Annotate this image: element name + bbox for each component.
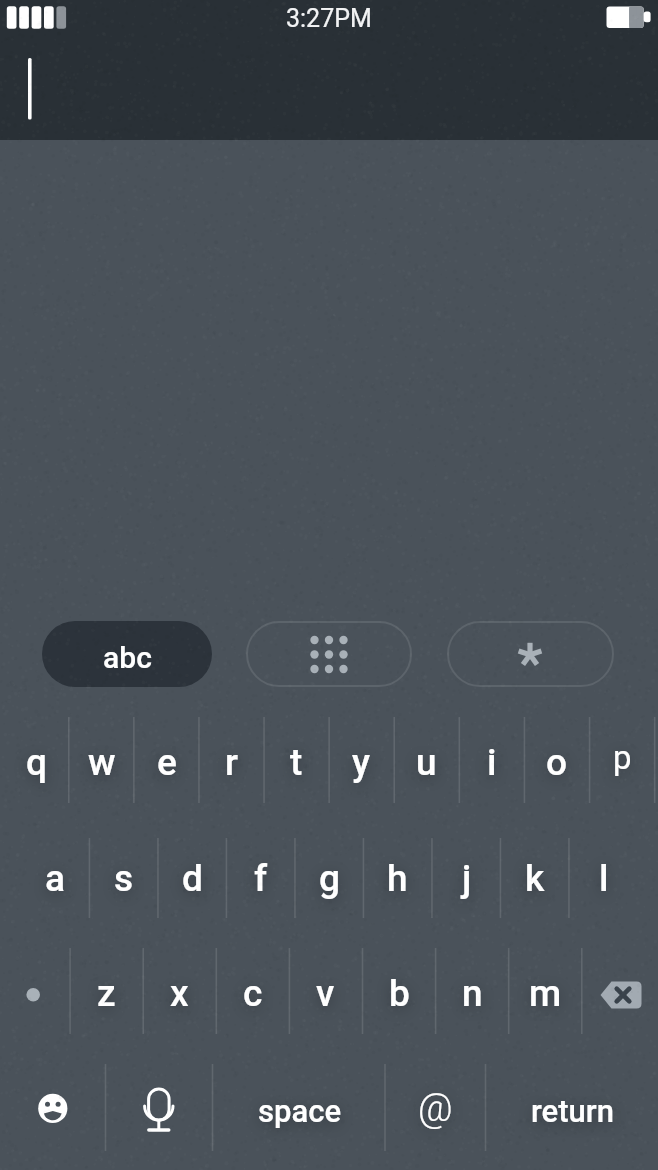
staticText: f — [254, 857, 268, 900]
button[interactable]: j — [432, 828, 501, 928]
button[interactable]: t — [264, 712, 329, 812]
staticText: d — [182, 857, 203, 900]
staticText: w — [88, 741, 116, 784]
button[interactable]: return — [486, 1055, 658, 1167]
staticText: z — [97, 972, 116, 1015]
staticText: b — [389, 972, 410, 1015]
staticText: n — [462, 972, 483, 1015]
button[interactable]: q — [4, 712, 69, 812]
staticText: 3:27PM — [286, 4, 372, 33]
staticText: c — [243, 972, 263, 1015]
button[interactable] — [0, 943, 70, 1043]
button[interactable]: z — [70, 943, 143, 1043]
staticText: a — [45, 857, 66, 900]
button[interactable] — [246, 621, 412, 687]
staticText: return — [531, 1093, 614, 1129]
staticText: v — [316, 972, 335, 1015]
button[interactable]: @ — [385, 1055, 486, 1167]
staticText: space — [258, 1093, 342, 1129]
staticText: @ — [418, 1086, 453, 1131]
staticText: g — [319, 857, 340, 900]
button[interactable]: i — [459, 712, 524, 812]
staticText: y — [352, 741, 371, 784]
button[interactable]: n — [436, 943, 509, 1043]
staticText: q — [26, 741, 48, 784]
staticText: l — [599, 857, 609, 900]
staticText: e — [157, 741, 177, 784]
button[interactable]: w — [69, 712, 134, 812]
button[interactable]: s — [89, 828, 158, 928]
staticText: r — [225, 741, 239, 784]
button[interactable]: c — [216, 943, 289, 1043]
button[interactable]: o — [524, 712, 589, 812]
button[interactable]: u — [394, 712, 459, 812]
button[interactable] — [447, 621, 614, 687]
button[interactable]: space — [213, 1055, 386, 1167]
button[interactable]: k — [500, 828, 569, 928]
staticText: u — [416, 741, 437, 784]
staticText: i — [487, 741, 497, 784]
staticText: p — [613, 738, 632, 777]
button[interactable]: x — [143, 943, 216, 1043]
staticText: h — [387, 857, 408, 900]
staticText: t — [290, 741, 303, 784]
button[interactable] — [0, 1055, 105, 1170]
staticText: x — [170, 972, 189, 1015]
button[interactable] — [105, 1055, 212, 1170]
staticText: abc — [103, 640, 152, 675]
button[interactable]: y — [329, 712, 394, 812]
button[interactable]: h — [363, 828, 432, 928]
button[interactable]: abc — [42, 621, 212, 687]
button[interactable]: e — [134, 712, 199, 812]
button[interactable] — [582, 943, 658, 1043]
button[interactable]: f — [226, 828, 295, 928]
staticText: j — [462, 857, 472, 900]
button[interactable]: p — [590, 707, 655, 807]
staticText: m — [529, 972, 562, 1015]
staticText: o — [546, 741, 568, 784]
button[interactable]: a — [21, 828, 90, 928]
button[interactable]: l — [569, 828, 638, 928]
button[interactable]: v — [289, 943, 362, 1043]
button[interactable]: r — [199, 712, 264, 812]
button[interactable]: d — [158, 828, 227, 928]
staticText: s — [114, 857, 134, 900]
button[interactable]: g — [295, 828, 364, 928]
button[interactable]: m — [509, 943, 582, 1043]
button[interactable]: b — [363, 943, 436, 1043]
staticText: k — [525, 857, 545, 900]
